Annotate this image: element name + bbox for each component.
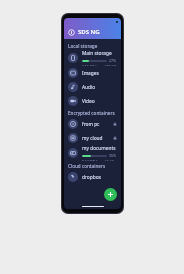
button[interactable]: dropbox — [64, 170, 121, 184]
staticText: 27% — [109, 58, 117, 63]
staticText: dropbox — [82, 174, 117, 181]
staticText: Audio — [82, 84, 117, 91]
button[interactable]: Images — [64, 66, 121, 80]
staticText: Local storage — [68, 43, 98, 49]
staticText: SDS NG — [78, 28, 100, 36]
staticText: 35% — [109, 153, 117, 158]
staticText: Main storage — [82, 50, 112, 57]
staticText: my documents — [82, 145, 116, 152]
staticText: 9,64 MB free of 5,60 MB — [82, 159, 117, 161]
staticText: Video — [82, 98, 117, 105]
button[interactable]: SDS NG — [68, 28, 100, 36]
staticText: Images — [82, 70, 117, 77]
staticText: Encrypted containers — [68, 110, 115, 116]
button[interactable]: Main storage — [64, 50, 121, 66]
button[interactable]: from pc — [64, 117, 121, 131]
staticText: 2,56 GB free of 25 GB — [82, 64, 116, 66]
button[interactable]: Audio — [64, 80, 121, 94]
staticText: Cloud containers — [68, 163, 106, 169]
staticText: my cloud — [82, 135, 113, 142]
button[interactable]: my cloud — [64, 131, 121, 145]
button[interactable]: Add container — [104, 188, 117, 201]
button[interactable]: my documents — [64, 145, 121, 161]
button[interactable]: Video — [64, 94, 121, 108]
staticText: from pc — [82, 121, 113, 128]
